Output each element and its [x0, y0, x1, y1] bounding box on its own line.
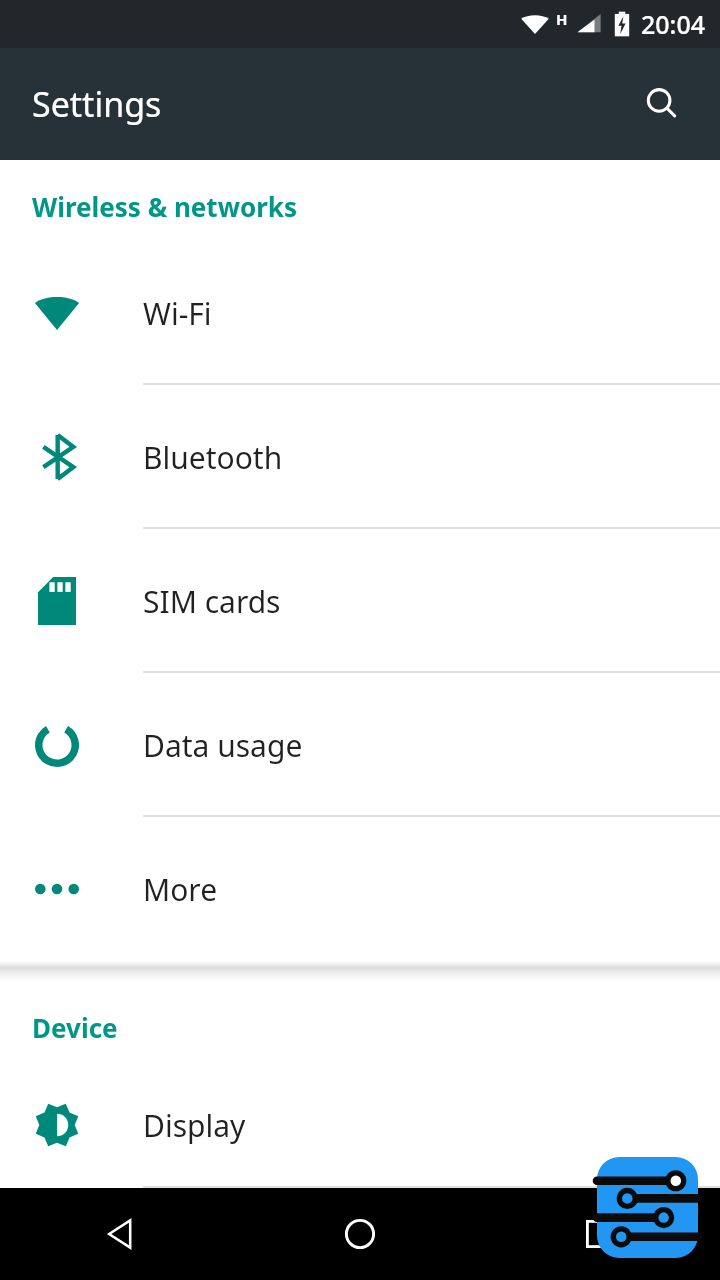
staticText: H [556, 9, 568, 29]
staticText: Device [32, 1010, 118, 1045]
button[interactable]: Wi-Fi [0, 241, 720, 385]
staticText: Wireless & networks [32, 189, 297, 224]
button[interactable]: Data usage [0, 673, 720, 817]
button[interactable]: SIM cards [0, 529, 720, 673]
staticText: SIM cards [143, 581, 281, 622]
staticText: 20:04 [641, 7, 706, 41]
button[interactable]: Search [630, 72, 694, 136]
button[interactable]: Home [240, 1188, 480, 1280]
staticText: Data usage [143, 725, 303, 766]
staticText: Settings [32, 81, 162, 127]
button[interactable]: More [0, 817, 720, 961]
staticText: Wi-Fi [143, 293, 212, 334]
button[interactable]: Recent apps [480, 1188, 720, 1280]
button[interactable]: Display [0, 1062, 720, 1188]
button[interactable]: Bluetooth [0, 385, 720, 529]
button[interactable]: Back [0, 1188, 240, 1280]
staticText: More [143, 869, 218, 910]
staticText: Bluetooth [143, 437, 283, 478]
staticText: Display [143, 1105, 246, 1146]
button[interactable]: Circuit app overlay [597, 1157, 698, 1258]
